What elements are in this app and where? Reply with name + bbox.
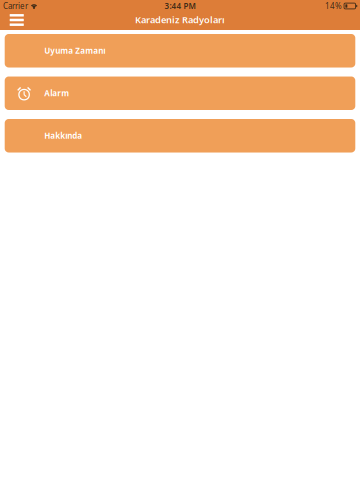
- button[interactable]: Hakkında: [5, 119, 355, 152]
- button[interactable]: Uyuma Zamanı: [5, 34, 355, 67]
- staticText: 3:44 PM: [164, 1, 195, 11]
- button[interactable]: Alarm: [5, 76, 355, 110]
- staticText: Karadeniz Radyoları: [135, 13, 225, 26]
- staticText: Hakkında: [44, 130, 82, 141]
- staticText: Carrier: [3, 1, 28, 11]
- staticText: 14%: [325, 1, 342, 11]
- staticText: Alarm: [44, 88, 69, 98]
- staticText: Uyuma Zamanı: [44, 45, 105, 56]
- button[interactable]: Menu: [0, 11, 33, 29]
